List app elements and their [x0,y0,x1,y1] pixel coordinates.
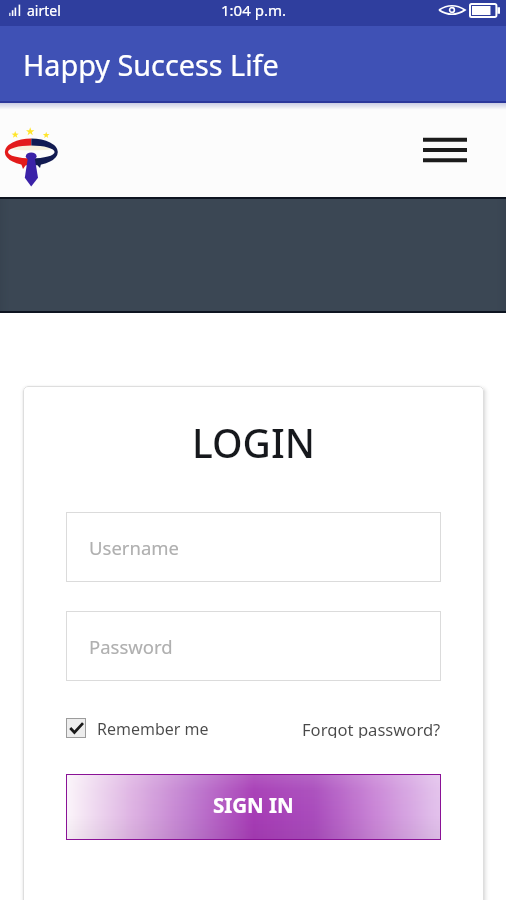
staticText: airtel [27,1,61,20]
button[interactable]: SIGN IN [66,774,441,840]
button[interactable]: Remember me [66,718,209,738]
staticText: Remember me [97,718,209,738]
staticText: Username [89,535,180,560]
staticText: Forgot password? [302,718,441,738]
button[interactable]: Happy Success Life logo [0,103,66,197]
staticText: Happy Success Life [23,45,279,84]
button[interactable]: Open navigation menu [422,127,468,173]
button[interactable]: Forgot password? [302,718,441,738]
staticText: 1:04 p.m. [221,0,286,20]
staticText: Password [89,634,173,659]
other: Eye protection on [439,4,465,16]
button[interactable]: Username [66,512,441,582]
button[interactable]: Password [66,611,441,681]
staticText: LOGIN [66,416,441,469]
staticText: SIGN IN [213,791,294,819]
